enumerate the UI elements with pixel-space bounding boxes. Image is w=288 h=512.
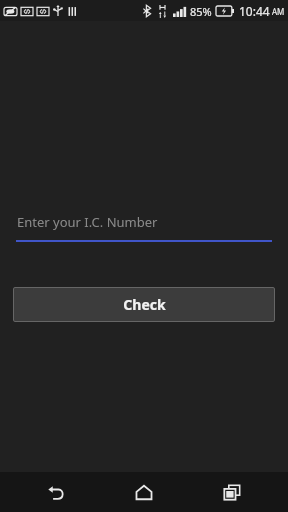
staticText: Check (123, 295, 166, 314)
staticText: 10:44 (239, 3, 270, 19)
staticText: AM (272, 6, 285, 17)
staticText: 85% (190, 4, 212, 19)
button[interactable]: Home (112, 472, 176, 512)
button[interactable]: Enter your I.C. Number (16, 213, 272, 242)
staticText: Enter your I.C. Number (17, 213, 158, 231)
button[interactable]: Recent apps (200, 472, 264, 512)
button[interactable]: Check (13, 287, 275, 322)
button[interactable]: Back (24, 472, 88, 512)
